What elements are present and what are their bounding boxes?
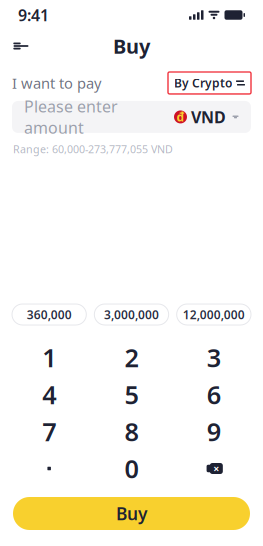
staticText: Buy [113, 33, 150, 59]
staticText: 3,000,000 [104, 306, 159, 322]
staticText: 2 [124, 341, 138, 374]
button[interactable]: Delete [173, 450, 255, 487]
button[interactable]: 4 [8, 376, 90, 413]
staticText: 6 [207, 378, 221, 411]
button[interactable]: Decimal point [8, 450, 90, 487]
button[interactable]: 1 [8, 339, 90, 376]
staticText: Please enter amount [24, 96, 118, 138]
button[interactable]: 5 [90, 376, 173, 413]
staticText: I want to pay [12, 73, 101, 93]
button[interactable]: 8 [90, 413, 173, 450]
staticText: 0 [124, 452, 138, 485]
staticText: 360,000 [27, 306, 72, 322]
button[interactable]: 360,000 [12, 304, 86, 325]
staticText: 9:41 [18, 4, 49, 26]
staticText: × [213, 461, 219, 476]
button[interactable]: đ [174, 106, 239, 127]
staticText: 12,000,000 [183, 306, 245, 322]
staticText: 3 [207, 341, 221, 374]
staticText: 5 [124, 378, 138, 411]
staticText: 9 [207, 415, 221, 448]
staticText: Buy [116, 502, 147, 525]
button[interactable]: 2 [90, 339, 173, 376]
staticText: đ [176, 109, 184, 125]
button[interactable]: Buy [13, 497, 250, 530]
staticText: 4 [42, 378, 56, 411]
staticText: 8 [124, 415, 138, 448]
staticText: Range: 60,000-273,777,055 VND [13, 142, 173, 156]
button[interactable]: 12,000,000 [177, 304, 251, 325]
button[interactable]: By Crypto [168, 72, 251, 94]
button[interactable]: 3 [173, 339, 255, 376]
button[interactable]: 7 [8, 413, 90, 450]
staticText: By Crypto [174, 75, 232, 91]
button[interactable]: 6 [173, 376, 255, 413]
staticText: 1 [42, 341, 56, 374]
staticText: VND [191, 106, 226, 127]
button[interactable]: 9 [173, 413, 255, 450]
button[interactable]: 3,000,000 [94, 304, 169, 325]
button[interactable]: 0 [90, 450, 173, 487]
staticText: 7 [42, 415, 56, 448]
button[interactable]: Back [4, 30, 38, 62]
